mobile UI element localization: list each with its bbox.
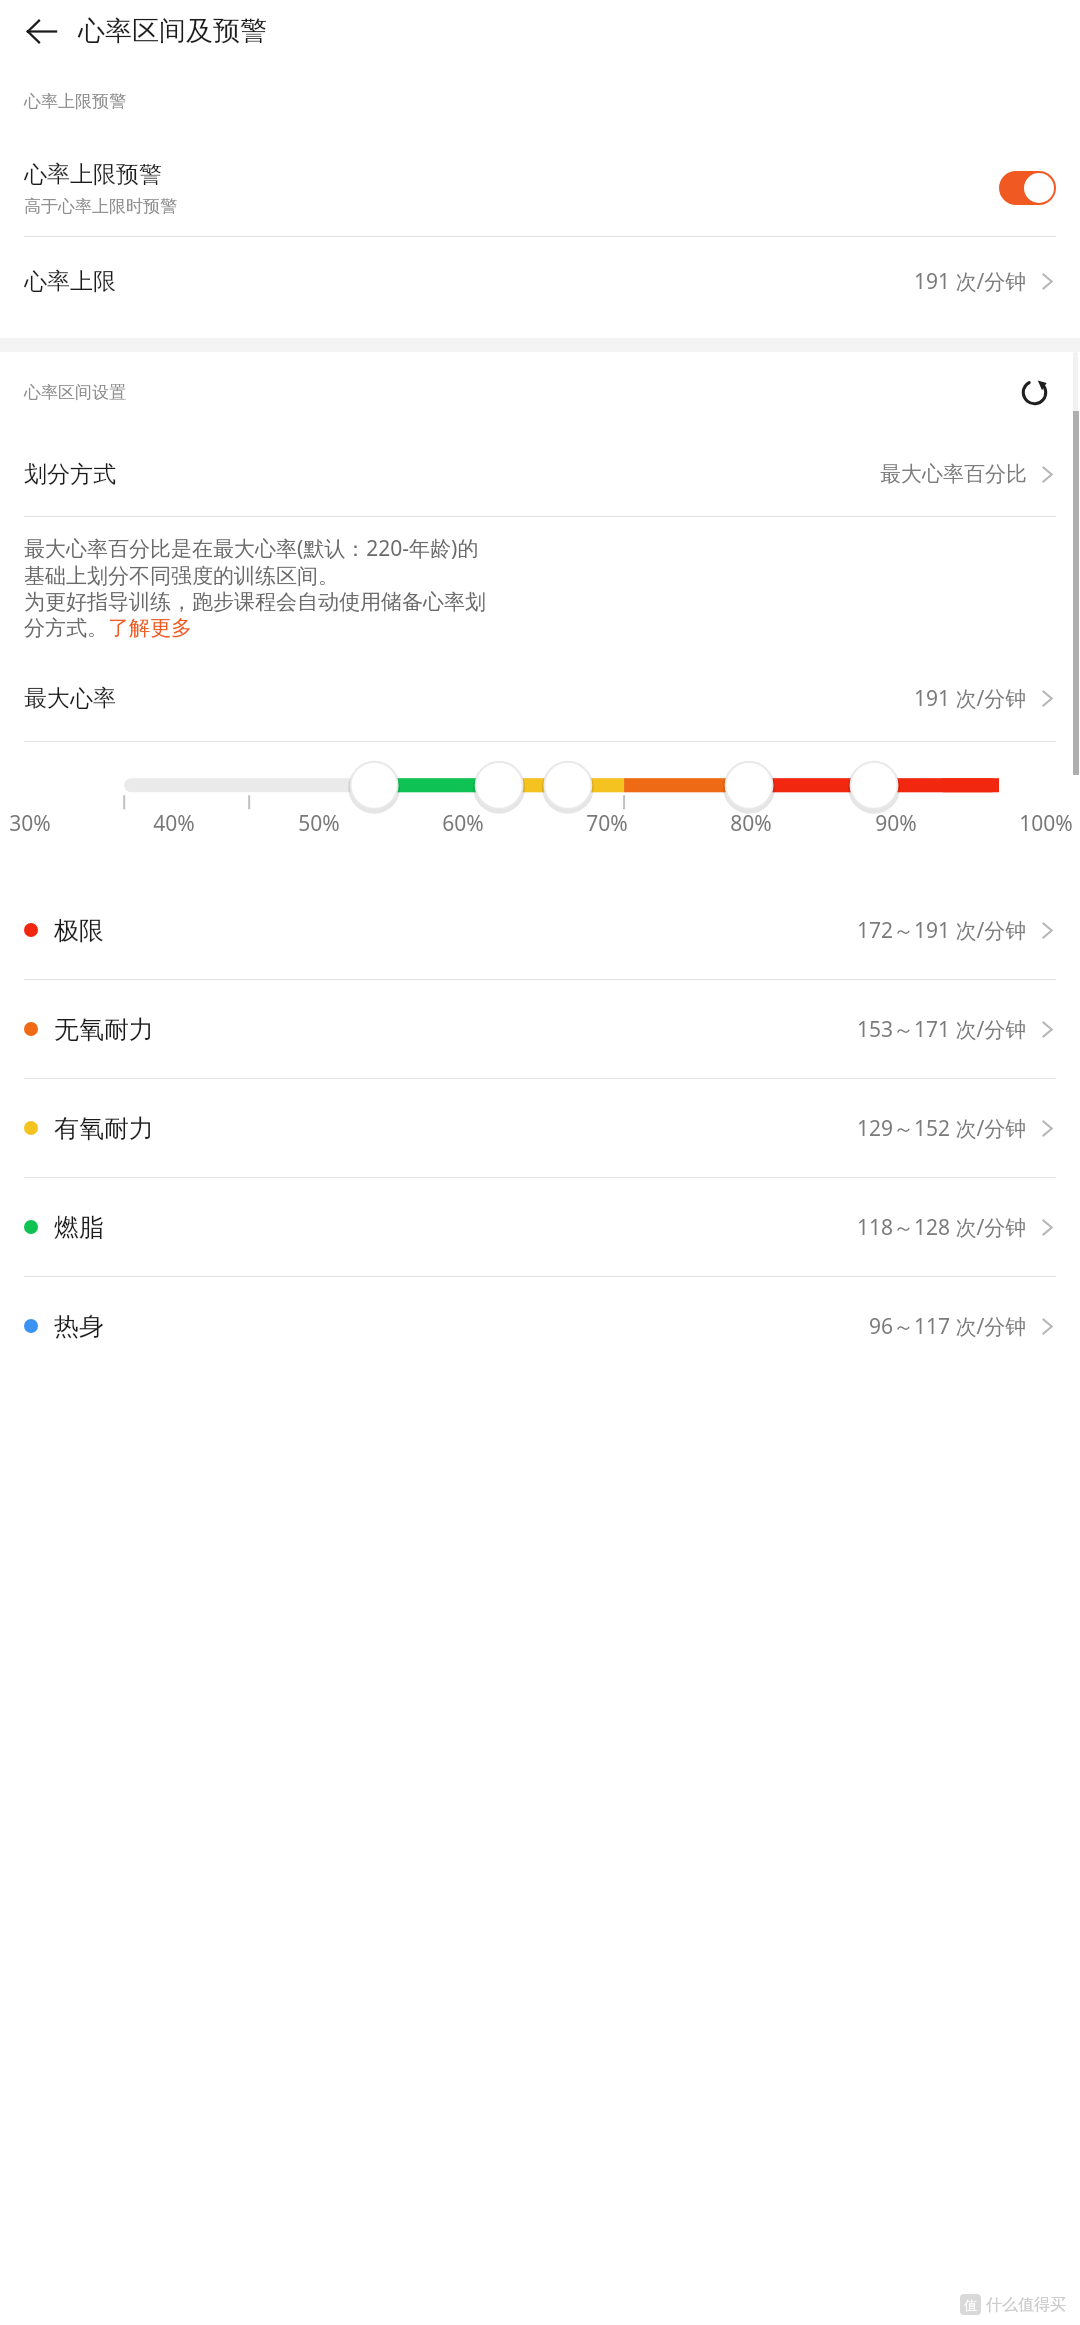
staticText: 172～191 次/分钟 — [857, 916, 1027, 945]
staticText: 50% — [298, 809, 340, 838]
staticText: 70% — [586, 809, 628, 838]
button[interactable]: 燃脂 — [0, 1178, 1080, 1276]
button[interactable]: 重置心率区间 — [1010, 368, 1058, 416]
staticText: 燃脂 — [54, 1212, 857, 1243]
staticText: 最大心率百分比 — [880, 461, 1027, 487]
staticText: 191 次/分钟 — [914, 267, 1027, 296]
staticText: 值 — [964, 2297, 977, 2313]
staticText: 无氧耐力 — [54, 1014, 857, 1045]
staticText: 30% — [9, 809, 51, 838]
staticText: 80% — [730, 809, 772, 838]
staticText: 极限 — [54, 915, 857, 946]
button[interactable]: 最大心率 — [0, 655, 1080, 741]
staticText: 40% — [153, 809, 195, 838]
staticText: 划分方式 — [24, 460, 880, 489]
staticText: 60% — [442, 809, 484, 838]
button[interactable]: Back — [14, 4, 68, 58]
staticText: 分方式。 — [24, 615, 108, 641]
staticText: 什么值得买 — [986, 2295, 1066, 2315]
button[interactable]: 心率上限 — [0, 237, 1080, 325]
staticText: 191 次/分钟 — [914, 684, 1027, 713]
button[interactable]: 无氧耐力 — [0, 980, 1080, 1078]
staticText: 基础上划分不同强度的训练区间。 — [24, 563, 339, 589]
staticText: 心率区间设置 — [24, 382, 1010, 403]
staticText: 118～128 次/分钟 — [857, 1213, 1027, 1242]
button[interactable]: 心率上限预警 — [0, 140, 1080, 236]
staticText: 热身 — [54, 1311, 869, 1342]
staticText: 100% — [1019, 809, 1073, 838]
button[interactable]: 极限 — [0, 881, 1080, 979]
staticText: 最大心率百分比是在最大心率(默认：220-年龄)的 — [24, 534, 479, 563]
staticText: 心率区间及预警 — [78, 14, 267, 48]
staticText: 96～117 次/分钟 — [869, 1312, 1027, 1341]
button[interactable]: 心率上限预警开关 — [999, 171, 1056, 205]
staticText: 129～152 次/分钟 — [857, 1114, 1027, 1143]
button[interactable]: 有氧耐力 — [0, 1079, 1080, 1177]
staticText: 90% — [875, 809, 917, 838]
button[interactable]: 了解更多 — [108, 615, 192, 641]
staticText: 为更好指导训练，跑步课程会自动使用储备心率划 — [24, 589, 486, 615]
staticText: 153～171 次/分钟 — [857, 1015, 1027, 1044]
staticText: 了解更多 — [108, 615, 192, 641]
button[interactable]: 划分方式 — [0, 432, 1080, 516]
staticText: 最大心率 — [24, 684, 914, 713]
staticText: 高于心率上限时预警 — [24, 196, 177, 217]
button[interactable]: 热身 — [0, 1277, 1080, 1375]
staticText: 心率上限 — [24, 267, 914, 296]
staticText: 心率上限预警 — [24, 91, 126, 112]
staticText: 心率上限预警 — [24, 160, 162, 189]
staticText: 有氧耐力 — [54, 1113, 857, 1144]
